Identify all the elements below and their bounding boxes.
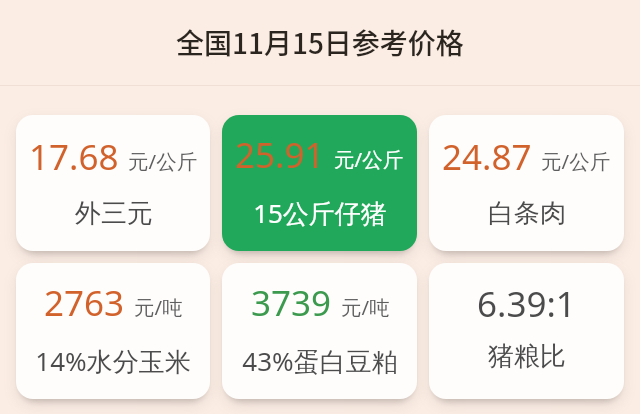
- button[interactable]: 3739: [222, 263, 417, 399]
- staticText: 43%蛋白豆粕: [242, 343, 398, 379]
- button[interactable]: 2763: [16, 263, 210, 399]
- button[interactable]: 25.91: [222, 115, 417, 251]
- staticText: 17.68: [29, 133, 119, 181]
- button[interactable]: 24.87: [429, 115, 624, 251]
- staticText: 元/公斤: [541, 147, 611, 175]
- staticText: 元/吨: [134, 293, 183, 321]
- staticText: 元/公斤: [334, 145, 404, 173]
- staticText: 全国11月15日参考价格: [176, 22, 464, 63]
- staticText: 2763: [44, 279, 125, 327]
- staticText: 白条肉: [488, 197, 566, 230]
- button[interactable]: 17.68: [16, 115, 210, 251]
- staticText: 元/吨: [341, 293, 390, 321]
- staticText: 25.91: [235, 131, 325, 179]
- staticText: 外三元: [75, 197, 153, 230]
- staticText: 3739: [251, 279, 332, 327]
- button[interactable]: 6.39:1: [429, 263, 624, 399]
- staticText: 15公斤仔猪: [253, 195, 387, 231]
- staticText: 24.87: [442, 133, 532, 181]
- staticText: 14%水分玉米: [35, 343, 191, 379]
- staticText: 元/公斤: [128, 147, 198, 175]
- staticText: 6.39:1: [477, 280, 576, 328]
- staticText: 猪粮比: [488, 340, 566, 373]
